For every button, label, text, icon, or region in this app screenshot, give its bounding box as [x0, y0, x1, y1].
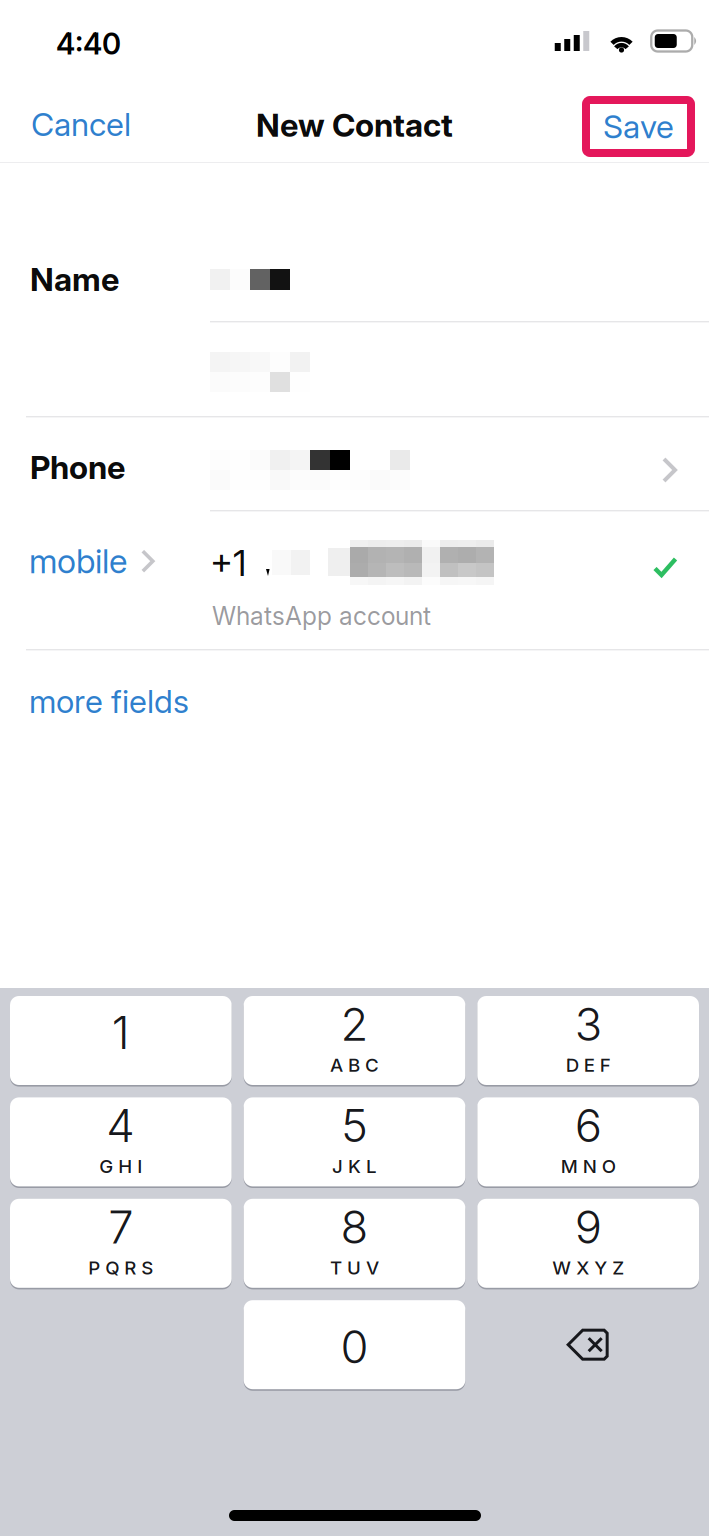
staticText: P Q R S [88, 1256, 153, 1279]
button[interactable]: mobile [25, 531, 159, 591]
button[interactable]: 0 [244, 1300, 465, 1389]
button[interactable]: Delete [477, 1300, 699, 1389]
button[interactable]: 8 [244, 1199, 465, 1288]
staticText: 3 [575, 997, 602, 1052]
staticText: WhatsApp account [212, 601, 431, 631]
staticText: mobile [29, 541, 127, 581]
button[interactable]: Cancel [15, 91, 147, 158]
staticText: more fields [29, 682, 189, 721]
staticText: +1 [210, 541, 246, 585]
button[interactable]: 1 [10, 996, 232, 1085]
staticText: 0 [340, 1319, 368, 1374]
staticText: Phone [30, 448, 125, 487]
staticText: T U V [330, 1256, 379, 1279]
staticText: 8 [340, 1200, 368, 1254]
staticText: 5 [341, 1098, 368, 1153]
button[interactable]: 5 [244, 1097, 465, 1186]
staticText: W X Y Z [552, 1256, 624, 1279]
button[interactable]: 2 [244, 996, 465, 1085]
staticText: 4 [106, 1098, 135, 1153]
staticText: Name [30, 260, 119, 299]
staticText: 4:40 [56, 26, 121, 61]
staticText: Save [603, 107, 674, 146]
button[interactable]: more fields [25, 670, 193, 733]
staticText: 9 [575, 1200, 602, 1254]
staticText: J K L [332, 1155, 377, 1178]
button[interactable]: 6 [477, 1097, 699, 1186]
button[interactable]: 3 [477, 996, 699, 1085]
staticText: 2 [340, 997, 368, 1052]
button[interactable]: Save [586, 100, 691, 153]
staticText: G H I [99, 1155, 142, 1178]
staticText: New Contact [256, 106, 453, 144]
staticText: A B C [330, 1054, 379, 1076]
staticText: 6 [575, 1098, 602, 1153]
button[interactable]: 4 [10, 1097, 232, 1186]
staticText: D E F [566, 1054, 611, 1076]
staticText: 7 [108, 1200, 133, 1254]
staticText: 1 [112, 1005, 130, 1060]
staticText: Cancel [31, 105, 131, 144]
staticText: M N O [561, 1155, 616, 1178]
button[interactable]: 7 [10, 1199, 232, 1288]
button[interactable]: 9 [477, 1199, 699, 1288]
